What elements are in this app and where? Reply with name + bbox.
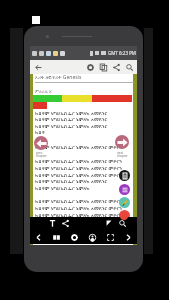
button[interactable]: Account: [86, 231, 99, 244]
button[interactable]: Search: [123, 61, 136, 74]
staticText: ምዕራፍ ፩: [35, 88, 52, 94]
staticText: ከዚያም እግዚአብሔር አምላክ ሰማይንና ምድርን ፈጠረ ብርሃንም ይ…: [35, 159, 128, 163]
staticText: ኦሪት ዘፍጥረት Genesis: [35, 74, 82, 81]
button[interactable]: Notes: [119, 184, 130, 195]
button[interactable]: Settings: [84, 61, 97, 74]
staticText: ከዚያም እግዚአብሔር አምላክ ሰማይንና ምድርን ፈጠረ ብርሃንም ይ…: [35, 199, 127, 203]
button[interactable]: Settings: [68, 231, 81, 244]
button[interactable]: Audio: [119, 210, 130, 221]
button[interactable]: Fullscreen: [104, 231, 117, 244]
button[interactable]: Highlight: [119, 197, 130, 208]
button[interactable]: Previous chapter: [34, 136, 48, 150]
button[interactable]: Back: [33, 62, 44, 73]
staticText: ከዚያም እግዚአብሔር አምላክ ሰማይንና ምድርን ፈጠረ ብርሃንም ይ…: [35, 179, 118, 183]
staticText: ከዚያም እግዚአብሔር አምላክ ሰማይንና ምድርን ፈጠረ ብርሃንም ይ…: [35, 111, 112, 115]
staticText: ከዚያም እግዚአብሔር አምላክ ሰማይንና ምድርን ፈጠረ ብርሃንም ይ…: [35, 145, 127, 149]
button[interactable]: Share: [110, 61, 123, 74]
staticText: ከዚያም እግዚአብሔር አምላክ ሰማይንና ምድርን ፈጠረ ብርሃንም ይ…: [35, 124, 120, 128]
button[interactable]: Search: [116, 217, 129, 230]
staticText: ከዚያም እግዚአብሔር አምላክ ሰማይንና ምድርን ፈጠረ ብርሃንም ይ…: [35, 130, 46, 134]
staticText: ከዚያም እግዚአብሔር አምላክ ሰማይንና ምድርን ፈጠረ ብርሃንም ይ…: [35, 206, 125, 210]
staticText: ከዚያም እግዚአብሔር አምላክ ሰማይንና ምድርን ፈጠረ ብርሃንም ይ…: [35, 186, 97, 190]
staticText: ከዚያም እግዚአብሔር አምላክ ሰማይንና ምድርን ፈጠረ ብርሃንም ይ…: [35, 117, 108, 121]
staticText: next chapter: [117, 151, 128, 158]
button[interactable]: Share: [59, 217, 72, 230]
button[interactable]: Previous page: [32, 231, 45, 244]
staticText: ከዚያም እግዚአብሔር አምላክ ሰማይንና ምድርን ፈጠረ ብርሃንም ይ…: [35, 213, 128, 217]
button[interactable]: Text size: [46, 217, 59, 230]
staticText: prev chapter: [36, 151, 47, 158]
button[interactable]: Books: [50, 231, 63, 244]
staticText: ከዚያም እግዚአብሔር አምላክ ሰማይንና ምድርን ፈጠረ ብርሃንም ይ…: [35, 166, 125, 170]
button[interactable]: Next chapter: [115, 135, 129, 149]
button[interactable]: Bookmark: [119, 170, 130, 181]
button[interactable]: Highlight: [103, 217, 116, 230]
button[interactable]: Next page: [122, 231, 135, 244]
staticText: GMT 6:23 PM: [108, 50, 136, 56]
button[interactable]: Copy: [97, 61, 110, 74]
staticText: ከዚያም እግዚአብሔር አምላክ ሰማይንና ምድርን ፈጠረ ብርሃንም ይ…: [35, 173, 124, 177]
